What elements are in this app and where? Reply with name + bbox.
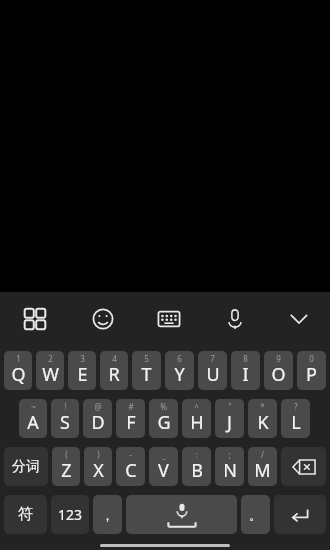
staticText: : [195,449,198,460]
staticText: R [108,362,120,387]
button[interactable]: 123 [51,495,89,534]
staticText: K [257,410,269,435]
staticText: - [129,449,132,460]
button[interactable]: Keyboard settings [136,292,202,346]
staticText: 符 [18,505,33,524]
staticText: ; [228,449,231,460]
button[interactable]: % [149,399,178,438]
staticText: T [141,362,152,387]
staticText: 8 [243,353,248,364]
staticText: J [227,410,232,435]
button[interactable]: Hide keyboard [268,292,330,346]
button[interactable]: ! [51,399,79,438]
staticText: ， [101,507,114,523]
staticText: H [190,410,204,435]
staticText: M [254,458,271,483]
staticText: 9 [276,353,281,364]
staticText: B [191,458,203,483]
button[interactable]: 符 [4,495,47,534]
staticText: % [160,401,167,412]
staticText: O [271,362,286,387]
button[interactable]: 分词 [4,447,48,486]
staticText: _ [162,449,166,460]
button[interactable]: Voice input [202,292,268,346]
button[interactable]: - [116,447,145,486]
button[interactable]: ( [52,447,80,486]
staticText: 5 [144,353,149,364]
button[interactable]: 9 [264,351,293,390]
staticText: 3 [80,353,85,364]
staticText: D [91,410,105,435]
staticText: P [306,362,317,387]
button[interactable]: ~ [19,399,47,438]
button[interactable]: 2 [36,351,64,390]
button[interactable]: 3 [68,351,96,390]
button[interactable]: : [182,447,211,486]
staticText: I [242,362,249,387]
button[interactable]: 0 [297,351,326,390]
button[interactable]: Enter [274,495,326,534]
staticText: A [27,410,39,435]
staticText: U [206,362,220,387]
staticText: 7 [210,353,215,364]
button[interactable]: ， [93,495,122,534]
staticText: C [125,458,137,483]
button[interactable]: Keyboard layouts [0,292,70,346]
button[interactable]: 4 [100,351,128,390]
staticText: N [223,458,237,483]
staticText: * [260,401,265,412]
button[interactable]: 。 [241,495,270,534]
staticText: 4 [112,353,117,364]
staticText: G [157,410,171,435]
button[interactable]: ) [84,447,112,486]
button[interactable]: @ [83,399,112,438]
button[interactable]: / [248,447,277,486]
staticText: ~ [31,401,36,412]
staticText: " [228,401,232,412]
staticText: Z [61,458,72,483]
staticText: ) [97,449,100,460]
button[interactable]: Emoji [70,292,136,346]
staticText: 2 [48,353,53,364]
staticText: S [60,410,70,435]
staticText: Q [11,362,26,387]
staticText: ! [64,401,67,412]
button[interactable]: " [215,399,244,438]
staticText: ( [65,449,68,460]
staticText: / [261,449,264,460]
staticText: 。 [249,507,262,523]
button[interactable]: 8 [231,351,260,390]
staticText: 123 [58,505,83,524]
button[interactable]: ? [281,399,310,438]
staticText: Y [174,362,185,387]
staticText: 0 [309,353,314,364]
staticText: X [93,458,104,483]
staticText: F [126,410,136,435]
staticText: V [158,458,169,483]
button[interactable]: Space, voice input [126,495,237,534]
staticText: 分词 [12,458,40,476]
button[interactable]: # [116,399,145,438]
staticText: ? [294,401,298,412]
button[interactable]: 1 [4,351,32,390]
button[interactable]: ; [215,447,244,486]
button[interactable]: 5 [132,351,161,390]
button[interactable]: Backspace [281,447,326,486]
staticText: W [42,362,59,387]
button[interactable]: 6 [165,351,194,390]
staticText: L [291,410,301,435]
staticText: 1 [16,353,21,364]
staticText: # [128,401,134,412]
staticText: @ [94,401,102,412]
button[interactable]: 7 [198,351,227,390]
button[interactable]: * [248,399,277,438]
button[interactable]: _ [149,447,178,486]
staticText: E [77,362,88,387]
staticText: ^ [194,401,199,412]
staticText: 6 [177,353,182,364]
button[interactable]: ^ [182,399,211,438]
